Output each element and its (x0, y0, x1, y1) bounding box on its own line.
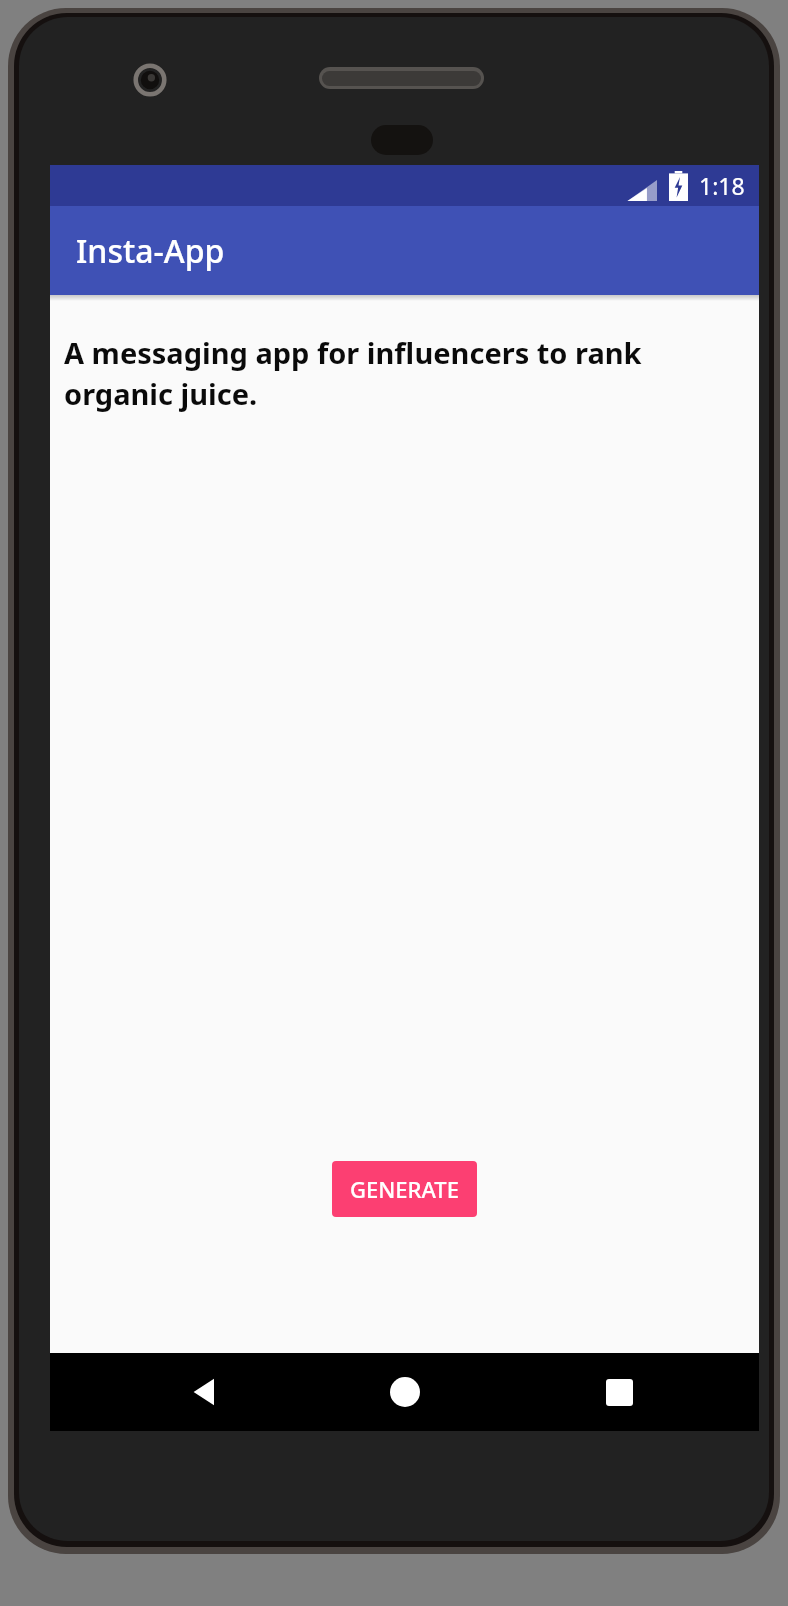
staticText: A messaging app for influencers to rank … (64, 333, 719, 414)
staticText: 1:18 (699, 170, 745, 201)
button[interactable]: Home (369, 1356, 441, 1428)
staticText: GENERATE (350, 1174, 459, 1204)
button[interactable]: GENERATE (332, 1161, 477, 1217)
button[interactable]: Back (169, 1356, 241, 1428)
button[interactable]: Recent apps (583, 1356, 655, 1428)
staticText: Insta-App (76, 229, 225, 273)
